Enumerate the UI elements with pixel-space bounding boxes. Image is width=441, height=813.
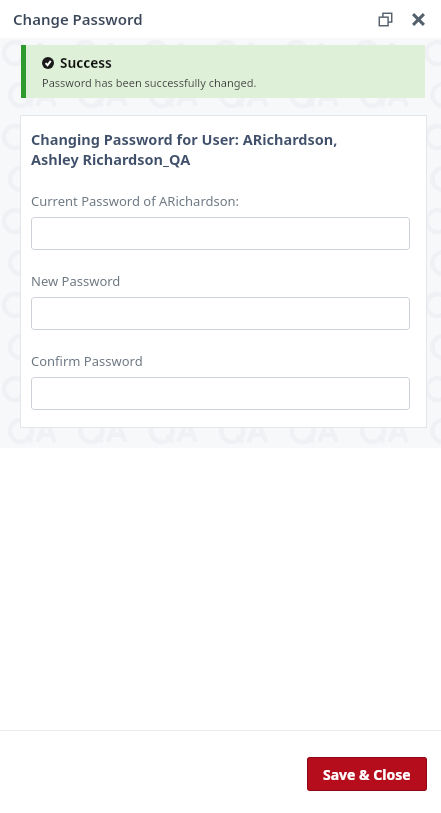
button[interactable]: Close [404,5,432,33]
button[interactable]: Confirm Password [31,377,410,410]
button[interactable]: New Password [31,297,410,330]
staticText: Confirm Password [31,352,143,370]
button[interactable]: Save & Close [307,757,427,791]
button[interactable]: Current Password of ARichardson: [31,217,410,250]
staticText: Success [60,54,112,72]
staticText: Change Password [13,9,143,29]
staticText: Changing Password for User: ARichardson,… [31,129,338,169]
button[interactable]: Restore window [371,5,399,33]
staticText: New Password [31,272,121,290]
staticText: Password has been successfully changed. [42,75,257,90]
staticText: Current Password of ARichardson: [31,192,240,210]
staticText: Save & Close [323,765,411,784]
